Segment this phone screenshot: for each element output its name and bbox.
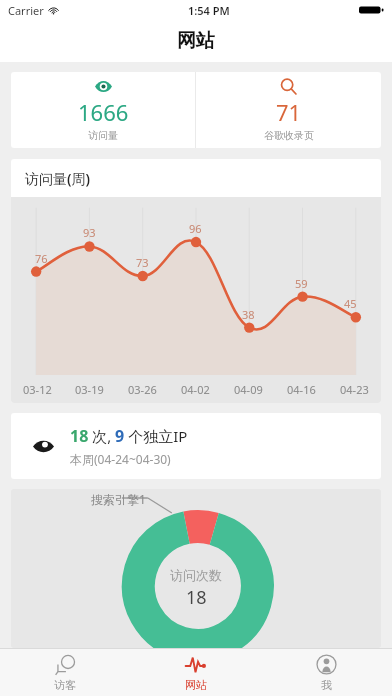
staticText: 谷歌收录页 <box>264 129 314 142</box>
staticText: 本周(04-24~04-30) <box>70 451 171 467</box>
staticText: 18 次, 9 个独立IP <box>70 425 188 447</box>
staticText: 访问量 <box>88 129 118 142</box>
button[interactable]: 我 <box>261 649 392 696</box>
staticText: 93 <box>83 225 96 240</box>
staticText: 96 <box>189 221 202 236</box>
staticText: 73 <box>136 255 149 270</box>
button[interactable]: 网站 <box>130 649 261 696</box>
staticText: 访问量(周) <box>25 169 91 188</box>
staticText: 访客 <box>54 678 76 692</box>
button[interactable]: 18 次, 9 个独立IP <box>11 413 381 479</box>
staticText: 04-02 <box>181 382 210 397</box>
staticText: 搜索引擎1 <box>91 491 146 507</box>
staticText: 76 <box>35 251 48 266</box>
staticText: 1:54 PM <box>188 3 230 18</box>
staticText: 45 <box>344 296 357 311</box>
staticText: 03-12 <box>23 382 52 397</box>
staticText: 网站 <box>177 29 215 53</box>
staticText: 访问次数 <box>170 567 222 583</box>
staticText: 04-23 <box>340 382 369 397</box>
staticText: 03-19 <box>75 382 104 397</box>
staticText: 04-09 <box>234 382 263 397</box>
staticText: 18 <box>186 585 207 610</box>
staticText: 38 <box>242 307 255 322</box>
staticText: 03-26 <box>128 382 157 397</box>
staticText: 网站 <box>185 678 207 692</box>
button[interactable]: 71 <box>196 72 381 148</box>
staticText: Carrier <box>8 3 44 18</box>
staticText: 我 <box>321 678 332 692</box>
staticText: 1666 <box>78 97 129 127</box>
staticText: 59 <box>295 276 308 291</box>
button[interactable]: 访客 <box>0 649 130 696</box>
staticText: 71 <box>276 97 302 127</box>
staticText: 04-16 <box>287 382 316 397</box>
button[interactable]: 1666 <box>11 72 195 148</box>
